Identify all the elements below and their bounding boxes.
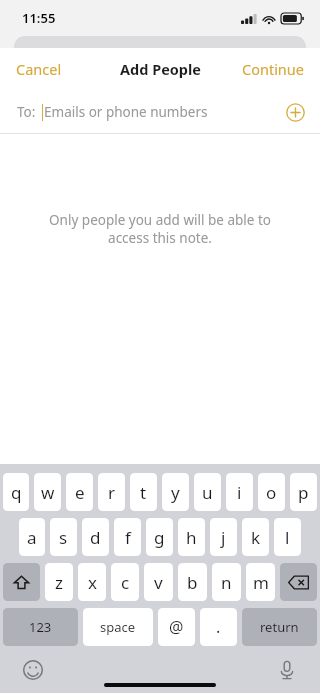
staticText: s: [59, 526, 68, 549]
button[interactable]: j: [210, 518, 237, 556]
button[interactable]: w: [34, 473, 61, 511]
staticText: e: [75, 481, 85, 504]
staticText: t: [140, 481, 147, 504]
button[interactable]: Cancel: [0, 51, 78, 87]
staticText: Only people you add will be able to acce…: [29, 211, 291, 247]
staticText: b: [187, 571, 198, 594]
button[interactable]: Dictation: [274, 657, 300, 683]
staticText: f: [125, 526, 131, 549]
button[interactable]: g: [146, 518, 173, 556]
button[interactable]: space: [83, 608, 153, 646]
staticText: n: [221, 571, 232, 594]
button[interactable]: t: [130, 473, 157, 511]
button[interactable]: h: [178, 518, 205, 556]
staticText: q: [11, 481, 22, 504]
button[interactable]: s: [50, 518, 77, 556]
button[interactable]: return: [242, 608, 317, 646]
button[interactable]: o: [258, 473, 285, 511]
button[interactable]: r: [98, 473, 125, 511]
button[interactable]: e: [66, 473, 93, 511]
staticText: m: [253, 571, 269, 594]
button[interactable]: n: [212, 563, 241, 601]
button[interactable]: b: [178, 563, 207, 601]
staticText: i: [237, 481, 242, 504]
staticText: c: [121, 571, 130, 594]
button[interactable]: c: [111, 563, 139, 601]
staticText: Emails or phone numbers: [44, 103, 208, 121]
button[interactable]: q: [3, 473, 29, 511]
button[interactable]: @: [158, 608, 195, 646]
button[interactable]: y: [162, 473, 189, 511]
button[interactable]: z: [45, 563, 73, 601]
staticText: .: [216, 616, 221, 638]
button[interactable]: i: [226, 473, 253, 511]
button[interactable]: x: [78, 563, 106, 601]
button[interactable]: d: [82, 518, 109, 556]
staticText: l: [285, 526, 290, 549]
button[interactable]: Continue: [226, 51, 320, 87]
staticText: u: [202, 481, 213, 504]
button[interactable]: .: [200, 608, 237, 646]
button[interactable]: k: [242, 518, 269, 556]
staticText: To:: [17, 103, 36, 121]
button[interactable]: 123: [3, 608, 78, 646]
staticText: y: [171, 481, 180, 504]
staticText: 123: [29, 618, 52, 636]
button[interactable]: Add contact: [283, 100, 307, 124]
staticText: k: [251, 526, 261, 549]
staticText: @: [169, 616, 184, 638]
button[interactable]: u: [194, 473, 221, 511]
staticText: Cancel: [16, 59, 62, 79]
staticText: x: [88, 571, 97, 594]
staticText: v: [154, 571, 163, 594]
staticText: Continue: [242, 59, 304, 79]
staticText: z: [55, 571, 63, 594]
button[interactable]: m: [246, 563, 275, 601]
staticText: a: [27, 526, 37, 549]
staticText: j: [221, 526, 226, 549]
button[interactable]: f: [114, 518, 141, 556]
button[interactable]: Emoji: [20, 657, 46, 683]
button[interactable]: Backspace: [280, 563, 317, 601]
staticText: w: [41, 481, 55, 504]
staticText: g: [154, 526, 165, 549]
button[interactable]: p: [290, 473, 317, 511]
staticText: return: [260, 618, 299, 636]
staticText: p: [298, 481, 309, 504]
staticText: 11:55: [22, 9, 56, 27]
staticText: d: [90, 526, 101, 549]
button[interactable]: Shift: [3, 563, 40, 601]
staticText: space: [100, 618, 136, 636]
staticText: o: [266, 481, 277, 504]
button[interactable]: v: [144, 563, 173, 601]
button[interactable]: a: [19, 518, 45, 556]
staticText: Add People: [120, 59, 201, 79]
staticText: h: [186, 526, 197, 549]
staticText: r: [108, 481, 116, 504]
button[interactable]: l: [274, 518, 301, 556]
